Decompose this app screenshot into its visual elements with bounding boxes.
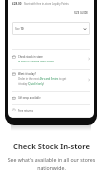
button[interactable]: Gift wrap available	[12, 91, 90, 104]
button[interactable]: Want it today?	[12, 69, 90, 91]
button[interactable]: Size 10	[12, 22, 90, 35]
other: Choose size	[83, 27, 87, 31]
staticText: Want it today?	[18, 72, 36, 76]
staticText: Check Stock In-store	[0, 141, 103, 151]
button[interactable]: Check stock in store	[12, 49, 90, 69]
staticText: Size 10	[15, 27, 24, 31]
button[interactable]: Free returns	[12, 104, 90, 117]
staticText: See what's available in all our stores n…	[5, 156, 98, 171]
staticText: Start with free in-store Loyalty Points	[24, 2, 69, 6]
staticText: Gift wrap available	[18, 96, 41, 100]
staticText: Order in the next 4hrs and 5mins to get	[18, 77, 67, 81]
staticText: £28.00	[12, 2, 22, 6]
staticText: SIZE GUIDE	[74, 11, 89, 15]
staticText: it today (Quick'n'only)	[18, 82, 44, 86]
button[interactable]: SIZE GUIDE	[8, 11, 89, 15]
staticText: In stock in Annette Henry Street	[18, 59, 54, 62]
staticText: Free returns	[18, 109, 33, 113]
staticText: Check stock in store	[18, 55, 43, 59]
